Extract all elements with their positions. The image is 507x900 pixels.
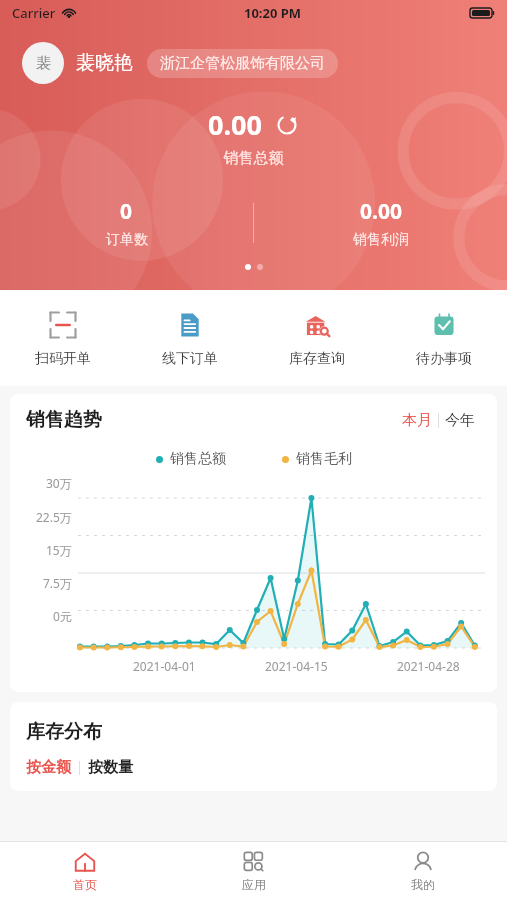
staticText: 线下订单 <box>162 350 218 368</box>
button[interactable]: 待办事项 <box>380 308 507 370</box>
button[interactable]: 0.00 <box>254 197 507 249</box>
staticText: 浙江企管松服饰有限公司 <box>160 54 325 73</box>
button[interactable]: 按数量 <box>80 758 133 777</box>
button[interactable]: 按金额 <box>26 758 79 777</box>
staticText: 2021-04-28 <box>397 658 460 674</box>
staticText: 15万 <box>46 542 72 558</box>
button[interactable]: 扫码开单 <box>0 308 126 370</box>
staticText: 7.5万 <box>43 575 72 591</box>
staticText: 裴 <box>36 54 51 73</box>
staticText: 我的 <box>411 877 435 892</box>
staticText: 2021-04-01 <box>133 658 196 674</box>
staticText: Carrier <box>12 4 56 22</box>
button[interactable]: 线下订单 <box>126 308 253 370</box>
button[interactable]: 我的 <box>338 842 507 900</box>
staticText: 库存查询 <box>289 350 345 368</box>
staticText: 首页 <box>73 877 97 892</box>
button[interactable]: 首页 <box>0 842 169 900</box>
button[interactable]: 本月 <box>396 409 438 432</box>
staticText: 0.00 <box>360 197 402 226</box>
staticText: 0 <box>120 197 133 226</box>
staticText: 30万 <box>46 475 72 491</box>
staticText: 按数量 <box>88 758 133 777</box>
staticText: 库存分布 <box>26 720 102 744</box>
staticText: 0.00 <box>208 106 262 143</box>
staticText: 销售总额 <box>170 450 226 468</box>
button[interactable]: 浙江企管松服饰有限公司 <box>147 49 338 78</box>
staticText: 销售总额 <box>0 149 507 168</box>
staticText: 应用 <box>242 877 266 892</box>
staticText: 订单数 <box>106 231 148 249</box>
staticText: 0元 <box>53 608 72 624</box>
staticText: 裴晓艳 <box>76 51 133 75</box>
staticText: 22.5万 <box>36 509 72 525</box>
staticText: 本月 <box>402 411 432 430</box>
staticText: 扫码开单 <box>35 350 91 368</box>
button[interactable]: 0 <box>0 197 253 249</box>
button[interactable]: Refresh <box>274 112 300 138</box>
staticText: 销售毛利 <box>296 450 352 468</box>
staticText: 销售趋势 <box>26 408 102 432</box>
button[interactable]: 应用 <box>169 842 338 900</box>
staticText: 今年 <box>445 411 475 430</box>
button[interactable]: 今年 <box>439 409 481 432</box>
button[interactable]: 裴 <box>22 42 64 84</box>
staticText: 2021-04-15 <box>265 658 328 674</box>
staticText: 按金额 <box>26 758 71 777</box>
button[interactable]: 库存查询 <box>253 308 380 370</box>
staticText: 10:20 PM <box>244 4 302 22</box>
staticText: 待办事项 <box>416 350 472 368</box>
staticText: 销售利润 <box>353 231 409 249</box>
